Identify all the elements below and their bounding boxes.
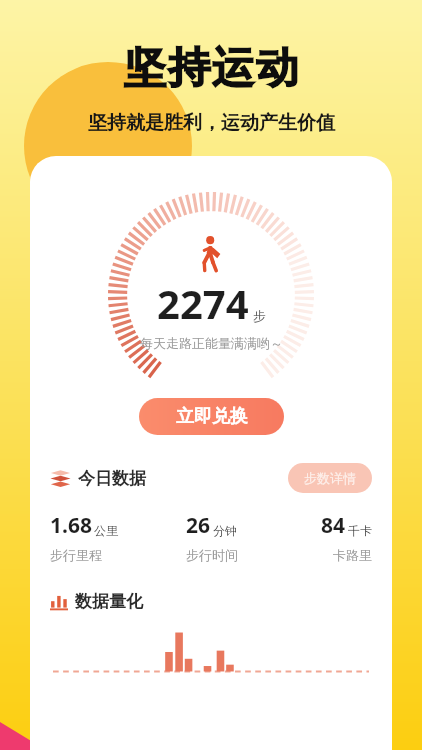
staticText: 步行时间 (186, 547, 238, 563)
staticText: 千卡 (348, 523, 372, 538)
staticText: 坚持运动 (123, 42, 299, 95)
staticText: 每天走路正能量满满哟～ (140, 335, 283, 351)
staticText: 公里 (94, 523, 118, 538)
staticText: 数据量化 (75, 591, 143, 612)
button[interactable]: 立即兑换 (139, 398, 284, 435)
staticText: 立即兑换 (176, 405, 248, 428)
staticText: 26 (186, 511, 211, 540)
staticText: 卡路里 (333, 547, 372, 563)
staticText: 分钟 (213, 523, 237, 538)
staticText: 步行里程 (50, 547, 102, 563)
staticText: 84 (321, 511, 346, 540)
staticText: 今日数据 (78, 468, 146, 489)
staticText: 2274 (157, 276, 249, 330)
staticText: 步 (253, 308, 266, 324)
staticText: 步数详情 (304, 470, 356, 486)
staticText: 1.68 (50, 511, 92, 540)
staticText: 坚持就是胜利，运动产生价值 (88, 111, 335, 135)
button[interactable]: 步数详情 (288, 463, 372, 493)
